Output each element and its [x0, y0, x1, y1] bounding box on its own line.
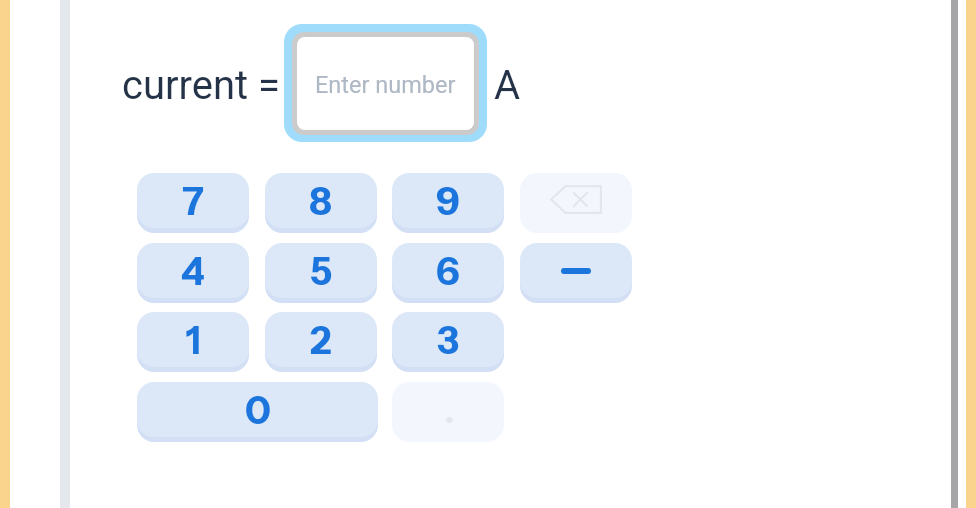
- button[interactable]: 8: [265, 173, 377, 228]
- staticText: 2: [310, 317, 332, 363]
- button[interactable]: 3: [392, 312, 504, 367]
- button[interactable]: Backspace: [520, 173, 632, 228]
- button[interactable]: 9: [392, 173, 504, 228]
- staticText: .: [444, 388, 456, 433]
- button[interactable]: Minus: [520, 243, 632, 298]
- staticText: 5: [310, 248, 333, 294]
- staticText: 6: [436, 248, 460, 294]
- button[interactable]: 2: [265, 312, 377, 367]
- staticText: 3: [437, 317, 460, 363]
- staticText: Enter number: [315, 71, 456, 99]
- staticText: 8: [309, 178, 333, 224]
- button[interactable]: 5: [265, 243, 377, 298]
- staticText: 4: [181, 248, 205, 294]
- button[interactable]: 0: [137, 382, 378, 437]
- button[interactable]: 4: [137, 243, 249, 298]
- staticText: A: [494, 62, 521, 109]
- button[interactable]: 1: [137, 312, 249, 367]
- staticText: 9: [436, 178, 460, 224]
- staticText: current =: [122, 62, 280, 109]
- staticText: 0: [245, 387, 271, 433]
- button[interactable]: 7: [137, 173, 249, 228]
- staticText: 1: [186, 317, 201, 363]
- button[interactable]: Enter number: [297, 37, 474, 130]
- staticText: 7: [182, 178, 204, 224]
- button[interactable]: 6: [392, 243, 504, 298]
